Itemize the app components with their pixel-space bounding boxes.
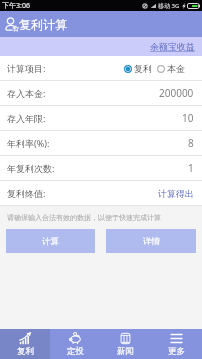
staticText: 1 [188, 161, 194, 175]
staticText: 本金 [167, 63, 185, 74]
staticText: 定投 [67, 346, 84, 357]
staticText: 计算 [42, 236, 59, 247]
staticText: 200000 [159, 86, 194, 100]
button[interactable]: 本金 [157, 63, 185, 74]
staticText: 新闻 [117, 346, 134, 357]
staticText: 复利终值: [7, 187, 46, 199]
button[interactable]: 计算 [6, 229, 95, 253]
staticText: 年复利次数: [7, 162, 55, 174]
button[interactable]: 复利 [124, 63, 152, 74]
button[interactable]: 定投 [50, 329, 100, 359]
button[interactable]: 复利 [0, 329, 50, 359]
staticText: 8 [188, 136, 194, 150]
staticText: 复利计算 [19, 17, 67, 32]
staticText: 请确保输入合法有效的数据，以便于快速完成计算 [7, 213, 161, 222]
staticText: 下午3:06 [2, 1, 30, 11]
button[interactable]: 更多 [151, 329, 202, 359]
button[interactable]: 余额宝收益 [150, 41, 202, 52]
button[interactable]: Account [3, 16, 19, 32]
staticText: 10 [182, 111, 194, 125]
staticText: 复利 [134, 63, 152, 74]
staticText: 计算得出 [158, 188, 194, 199]
staticText: 年利率(%): [7, 137, 50, 149]
staticText: 存入年限: [7, 112, 46, 124]
button[interactable]: 详情 [106, 229, 196, 253]
staticText: 移动 3G [158, 2, 180, 10]
staticText: 详情 [143, 236, 160, 247]
button[interactable]: 新闻 [100, 329, 151, 359]
staticText: 存入本金: [7, 87, 46, 99]
staticText: 更多 [168, 346, 185, 357]
staticText: 计算项目: [7, 62, 46, 74]
staticText: 复利 [17, 346, 34, 357]
